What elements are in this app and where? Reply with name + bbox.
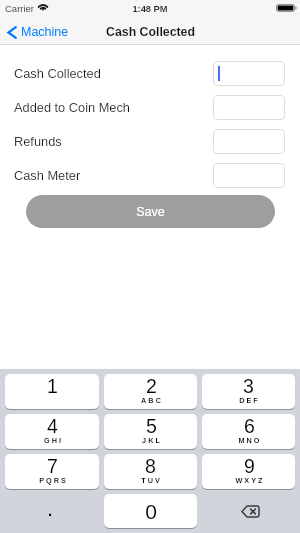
button[interactable]: 1	[5, 374, 99, 409]
staticText: 2	[146, 375, 157, 397]
button[interactable]: 7	[5, 454, 99, 489]
staticText: 0	[145, 500, 157, 523]
button[interactable]: 2	[104, 374, 197, 409]
staticText: Machine	[21, 25, 69, 39]
button[interactable]: 0	[104, 494, 197, 528]
staticText: 1:48 PM	[132, 4, 168, 14]
staticText: Cash Meter	[14, 168, 81, 182]
staticText: 8	[145, 455, 156, 477]
staticText: PQRS	[39, 476, 68, 484]
staticText: Refunds	[14, 134, 62, 148]
staticText: Save	[136, 205, 165, 219]
staticText: 4	[47, 415, 58, 437]
button[interactable]: Back to Machine	[0, 22, 77, 44]
staticText: JKL	[142, 436, 162, 444]
staticText: Cash Collected	[106, 25, 195, 39]
button[interactable]: 5	[104, 414, 197, 449]
staticText: 7	[47, 455, 58, 477]
staticText: Carrier	[5, 3, 35, 14]
button[interactable]: Added to Coin Mech amount field	[213, 95, 285, 120]
button[interactable]: Decimal point	[5, 494, 99, 528]
staticText: 5	[146, 415, 157, 437]
staticText: 9	[244, 455, 255, 477]
button[interactable]: 4	[5, 414, 99, 449]
button[interactable]: 8	[104, 454, 197, 489]
button[interactable]: Cash Collected amount field	[213, 61, 285, 86]
staticText: WXYZ	[235, 476, 265, 484]
button[interactable]: Refunds amount field	[213, 129, 285, 154]
staticText: .	[47, 496, 54, 521]
staticText: 3	[243, 375, 254, 397]
staticText: Cash Collected	[14, 66, 101, 80]
button[interactable]: 6	[202, 414, 295, 449]
staticText: ABC	[141, 396, 163, 404]
staticText: Added to Coin Mech	[14, 100, 130, 114]
staticText: 6	[244, 415, 255, 437]
staticText: GHI	[44, 436, 63, 444]
button[interactable]: Save	[26, 195, 275, 228]
button[interactable]: 3	[202, 374, 295, 409]
staticText: TUV	[141, 476, 162, 484]
button[interactable]: Backspace	[202, 494, 295, 528]
staticText: DEF	[239, 396, 260, 404]
button[interactable]: 9	[202, 454, 295, 489]
staticText: MNO	[238, 436, 262, 444]
button[interactable]: Cash Meter amount field	[213, 163, 285, 188]
staticText: 1	[47, 375, 58, 397]
